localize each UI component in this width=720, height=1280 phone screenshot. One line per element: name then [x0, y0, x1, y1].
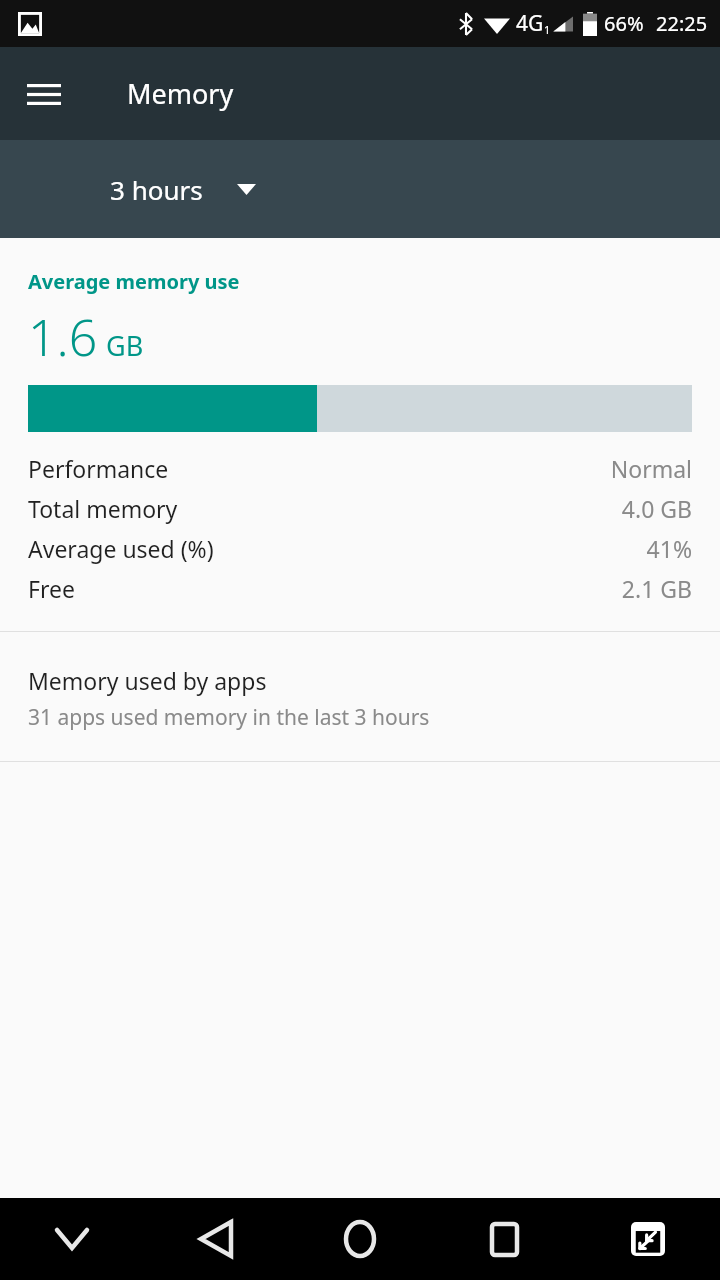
staticText: Memory	[127, 75, 234, 112]
staticText: Average memory use	[28, 268, 240, 295]
staticText: 2.1 GB	[621, 573, 692, 604]
staticText: Performance	[28, 453, 169, 484]
staticText: Free	[28, 573, 75, 604]
staticText: 3 hours	[110, 172, 203, 207]
staticText: GB	[106, 327, 144, 364]
staticText: Total memory	[28, 493, 178, 524]
staticText: Normal	[610, 453, 692, 484]
staticText: 66%	[604, 10, 644, 37]
staticText: 4G	[516, 9, 544, 38]
staticText: Average used (%)	[28, 533, 214, 564]
button[interactable]: Shrink screen	[576, 1198, 720, 1280]
staticText: 31 apps used memory in the last 3 hours	[28, 703, 430, 732]
button[interactable]: Home	[288, 1198, 432, 1280]
button[interactable]: Back	[144, 1198, 288, 1280]
button[interactable]: Open navigation menu	[16, 66, 72, 122]
staticText: 4.0 GB	[621, 493, 692, 524]
staticText: Memory used by apps	[28, 665, 267, 696]
staticText: 41%	[646, 533, 692, 564]
button[interactable]: Hide keyboard	[0, 1198, 144, 1280]
staticText: 22:25	[656, 10, 708, 37]
button[interactable]: 3 hours	[110, 172, 256, 207]
staticText: 1.6	[28, 303, 98, 371]
staticText: 1	[544, 22, 551, 37]
button[interactable]: Memory used by apps	[0, 632, 720, 761]
button[interactable]: Recent apps	[432, 1198, 576, 1280]
